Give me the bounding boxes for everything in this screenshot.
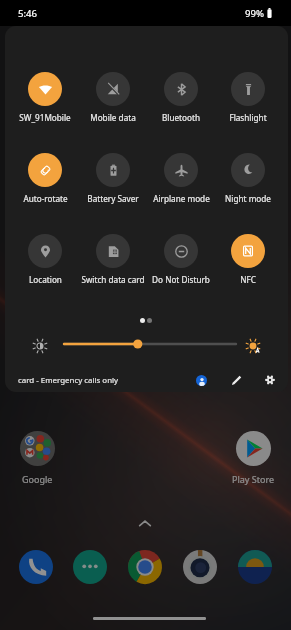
- staticText: Location: [29, 274, 62, 285]
- staticText: Bluetooth: [162, 112, 200, 123]
- staticText: Night mode: [225, 193, 271, 204]
- button[interactable]: Airplane mode: [147, 153, 215, 204]
- staticText: Switch data card: [81, 274, 145, 285]
- button[interactable]: Do Not Disturb: [147, 234, 215, 285]
- button[interactable]: SW_91Mobile: [11, 72, 79, 123]
- staticText: Battery Saver: [87, 193, 139, 204]
- staticText: Airplane mode: [153, 193, 210, 204]
- button[interactable]: Chrome: [128, 550, 162, 584]
- button[interactable]: Flashlight: [214, 72, 282, 123]
- button[interactable]: [60, 336, 240, 352]
- button[interactable]: Battery Saver: [79, 153, 147, 204]
- button[interactable]: User: [192, 371, 210, 389]
- staticText: Do Not Disturb: [152, 274, 210, 285]
- button[interactable]: Auto-rotate: [11, 153, 79, 204]
- button[interactable]: Settings: [261, 371, 279, 389]
- button[interactable]: Phone: [19, 550, 53, 584]
- staticText: NFC: [240, 274, 256, 285]
- staticText: Mobile data: [90, 112, 136, 123]
- button[interactable]: Night mode: [214, 153, 282, 204]
- button[interactable]: Location: [11, 234, 79, 285]
- button[interactable]: Messages: [73, 550, 107, 584]
- staticText: 5:46: [18, 7, 38, 20]
- button[interactable]: Open app drawer: [135, 514, 155, 534]
- button[interactable]: NFC: [214, 234, 282, 285]
- staticText: card - Emergency calls only: [18, 375, 119, 386]
- button[interactable]: Google: [4, 431, 70, 487]
- staticText: 99%: [245, 7, 264, 20]
- staticText: Google: [22, 473, 53, 485]
- button[interactable]: Play Store: [220, 431, 286, 487]
- staticText: Play Store: [232, 473, 274, 485]
- button[interactable]: Edit: [227, 371, 245, 389]
- button[interactable]: Brightness: [33, 339, 47, 353]
- staticText: SW_91Mobile: [19, 112, 71, 123]
- staticText: Flashlight: [229, 112, 267, 123]
- button[interactable]: Switch data card: [79, 234, 147, 285]
- button[interactable]: Camera: [183, 550, 217, 584]
- staticText: Auto-rotate: [23, 193, 68, 204]
- button[interactable]: Bluetooth: [147, 72, 215, 123]
- button[interactable]: Photos: [238, 550, 272, 584]
- button[interactable]: Auto brightness: [246, 339, 260, 353]
- button[interactable]: Mobile data: [79, 72, 147, 123]
